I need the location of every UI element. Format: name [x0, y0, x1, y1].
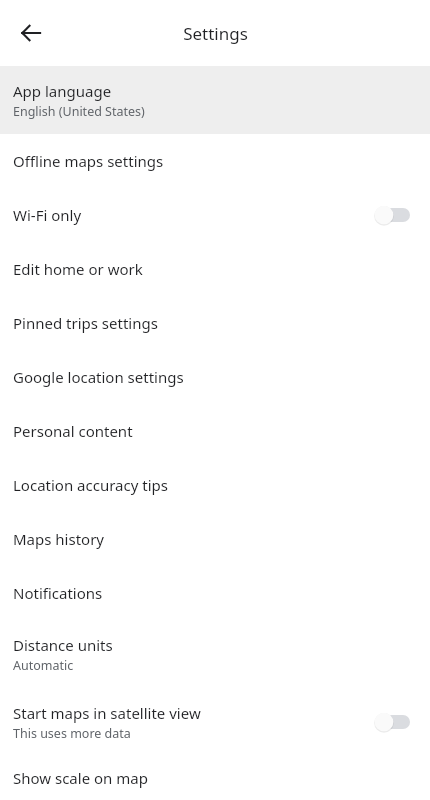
button[interactable]: Location accuracy tips — [0, 458, 430, 512]
staticText: Wi-Fi only — [13, 205, 82, 225]
button[interactable]: Distance units — [0, 620, 430, 688]
button[interactable]: Wi-Fi only — [0, 188, 430, 242]
staticText: Google location settings — [13, 367, 184, 387]
button[interactable]: Offline maps settings — [0, 134, 430, 188]
button[interactable]: Pinned trips settings — [0, 296, 430, 350]
button[interactable]: Maps history — [0, 512, 430, 566]
staticText: Show scale on map — [13, 768, 148, 788]
staticText: Location accuracy tips — [13, 475, 168, 495]
button[interactable]: Personal content — [0, 404, 430, 458]
staticText: Offline maps settings — [13, 151, 164, 171]
staticText: Personal content — [13, 421, 133, 441]
button[interactable]: Wi-Fi only — [372, 203, 414, 227]
button[interactable]: Back — [19, 21, 43, 45]
staticText: Notifications — [13, 583, 103, 603]
staticText: Settings — [183, 22, 248, 45]
button[interactable]: Google location settings — [0, 350, 430, 404]
staticText: This uses more data — [13, 725, 131, 742]
button[interactable]: Start maps in satellite view — [372, 710, 414, 734]
staticText: App language — [13, 81, 112, 101]
staticText: Start maps in satellite view — [13, 703, 201, 723]
button[interactable]: App language — [0, 66, 430, 134]
button[interactable]: Edit home or work — [0, 242, 430, 296]
staticText: Automatic — [13, 657, 74, 674]
staticText: English (United States) — [13, 103, 145, 120]
staticText: Edit home or work — [13, 259, 143, 279]
button[interactable]: Start maps in satellite view — [0, 688, 430, 756]
staticText: Maps history — [13, 529, 104, 549]
button[interactable]: Notifications — [0, 566, 430, 620]
staticText: Distance units — [13, 635, 113, 655]
button[interactable]: Show scale on map — [0, 756, 430, 800]
staticText: Pinned trips settings — [13, 313, 158, 333]
